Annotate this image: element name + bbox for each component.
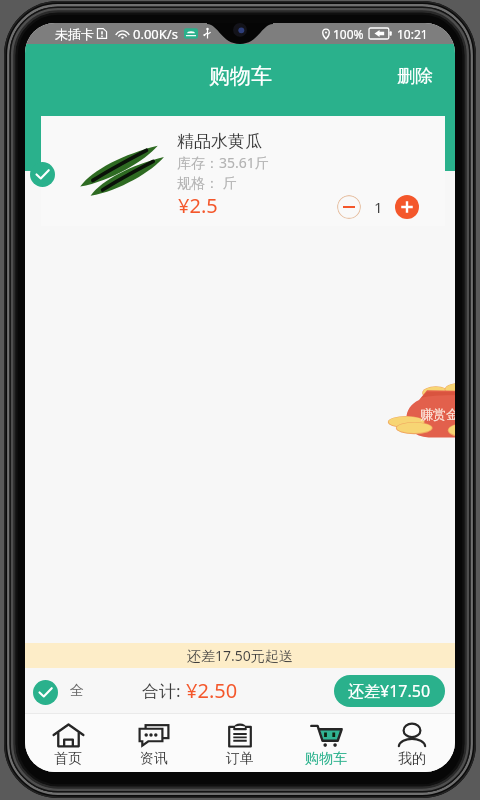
button[interactable]: 赚赏金 bbox=[387, 383, 455, 438]
staticText: 删除 bbox=[397, 65, 433, 88]
staticText: 合计: bbox=[142, 679, 181, 702]
button[interactable]: Select item bbox=[30, 162, 55, 187]
button[interactable]: 购物车 bbox=[283, 714, 369, 772]
staticText: 全 bbox=[70, 682, 84, 700]
staticText: 未插卡 bbox=[55, 26, 94, 42]
staticText: 还差¥17.50 bbox=[348, 680, 431, 702]
staticText: ¥2.50 bbox=[186, 677, 238, 704]
staticText: 精品水黄瓜 bbox=[177, 131, 262, 152]
button[interactable]: 资讯 bbox=[111, 714, 197, 772]
staticText: 资讯 bbox=[140, 750, 168, 768]
button[interactable]: 首页 bbox=[25, 714, 111, 772]
staticText: 首页 bbox=[54, 750, 82, 768]
staticText: 赚赏金 bbox=[420, 406, 455, 422]
staticText: 我的 bbox=[398, 750, 426, 768]
staticText: 库存：35.61斤 bbox=[177, 153, 269, 172]
staticText: ¥2.5 bbox=[178, 192, 218, 219]
button[interactable]: 全 bbox=[29, 673, 90, 708]
staticText: 还差17.50元起送 bbox=[187, 646, 293, 665]
staticText: 规格： 斤 bbox=[177, 173, 237, 192]
staticText: 1 bbox=[374, 197, 383, 217]
button[interactable]: 订单 bbox=[197, 714, 283, 772]
staticText: 购物车 bbox=[305, 750, 347, 768]
button[interactable]: Decrease quantity bbox=[337, 195, 361, 219]
button[interactable]: 还差¥17.50 bbox=[334, 675, 445, 707]
button[interactable]: 我的 bbox=[369, 714, 455, 772]
staticText: 0.00K/s bbox=[133, 25, 178, 43]
staticText: 订单 bbox=[226, 750, 254, 768]
staticText: 100% bbox=[333, 26, 364, 42]
button[interactable]: 删除 bbox=[375, 55, 455, 98]
button[interactable]: Increase quantity bbox=[395, 195, 419, 219]
staticText: 购物车 bbox=[209, 63, 272, 89]
staticText: 10:21 bbox=[397, 26, 428, 42]
